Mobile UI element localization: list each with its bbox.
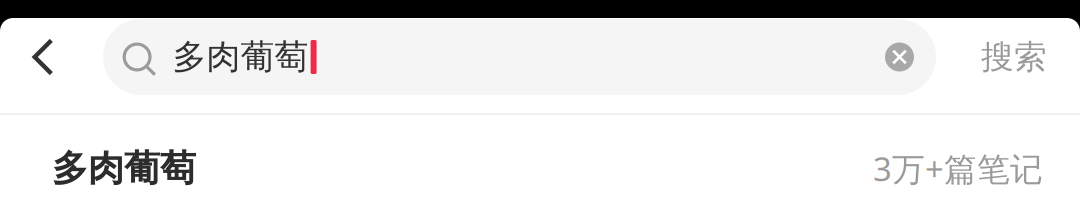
- button[interactable]: 搜索: [942, 19, 1080, 95]
- staticText: 多肉葡萄: [52, 146, 196, 191]
- staticText: 多肉葡萄: [173, 36, 309, 78]
- button[interactable]: Back: [0, 19, 86, 95]
- staticText: 3万+篇笔记: [873, 146, 1043, 191]
- button[interactable]: Clear search text: [863, 19, 936, 95]
- staticText: 搜索: [981, 36, 1047, 78]
- button[interactable]: 多肉葡萄: [0, 115, 1080, 222]
